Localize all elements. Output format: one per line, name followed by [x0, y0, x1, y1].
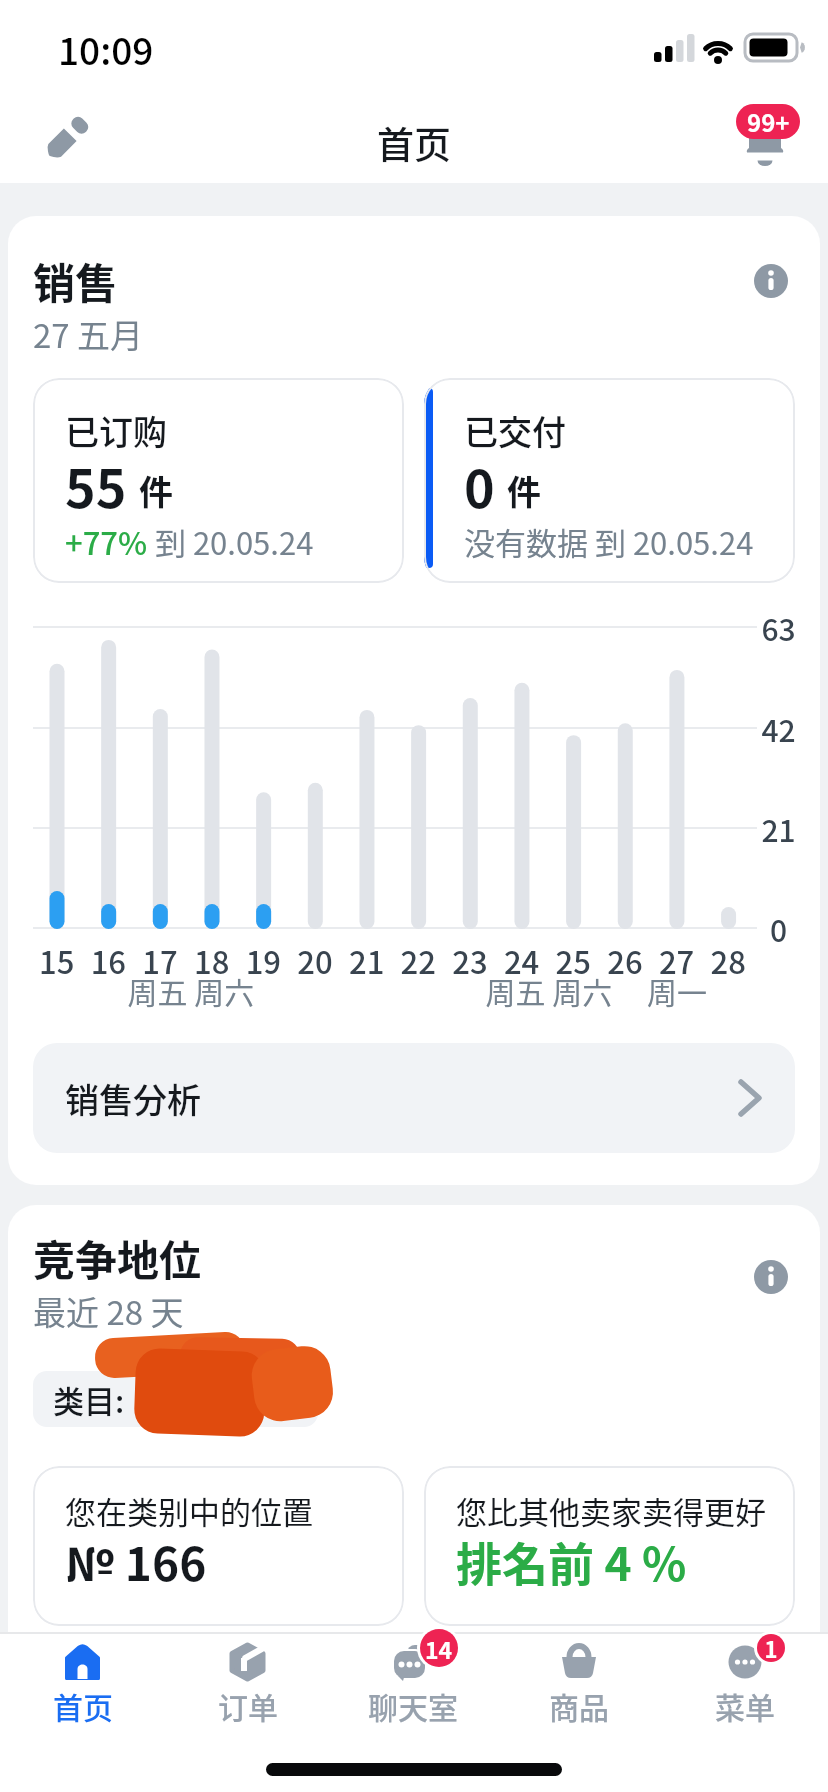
button[interactable]: 已订购 — [33, 378, 404, 583]
staticText: 27 五月 — [33, 310, 144, 358]
staticText: 类目: — [53, 1377, 125, 1422]
staticText: 订单 — [218, 1684, 278, 1727]
staticText: +77% — [65, 519, 148, 564]
staticText: 最近 28 天 — [33, 1287, 184, 1335]
staticText: 排名前 4 % — [456, 1528, 687, 1595]
staticText: 您比其他卖家卖得更好 — [456, 1488, 766, 1533]
staticText: 0 — [464, 448, 495, 523]
button[interactable]: 销售分析 — [33, 1043, 795, 1153]
button[interactable]: 聊天室 — [330, 1632, 496, 1792]
staticText: 件 — [507, 466, 541, 515]
button[interactable]: 首页 — [0, 1632, 165, 1792]
button[interactable]: 菜单 — [662, 1632, 828, 1792]
button[interactable] — [753, 263, 789, 299]
staticText: 竞争地位 — [33, 1227, 202, 1288]
staticText: 销售分析 — [65, 1074, 201, 1123]
staticText: 菜单 — [715, 1684, 775, 1727]
button[interactable] — [42, 113, 90, 165]
staticText: 首页 — [377, 116, 451, 170]
staticText: 销售 — [33, 250, 118, 311]
staticText: 聊天室 — [368, 1684, 458, 1727]
button[interactable]: 订单 — [165, 1632, 330, 1792]
staticText: 件 — [139, 466, 173, 515]
staticText: 到 20.05.24 — [148, 519, 314, 564]
staticText: 55 — [65, 448, 127, 523]
staticText: 10:09 — [58, 22, 154, 76]
button[interactable] — [753, 1259, 789, 1295]
staticText: 99+ — [747, 104, 790, 139]
staticText: 您在类别中的位置 — [65, 1488, 313, 1533]
staticText: 商品 — [549, 1684, 609, 1727]
button[interactable]: 99+ — [726, 96, 810, 168]
button[interactable]: 您比其他卖家卖得更好 — [424, 1466, 795, 1626]
button[interactable]: 您在类别中的位置 — [33, 1466, 404, 1626]
button[interactable]: 类目: — [33, 1371, 318, 1427]
button[interactable]: 商品 — [496, 1632, 662, 1792]
staticText: 没有数据 到 20.05.24 — [464, 519, 754, 564]
staticText: 已订购 — [65, 406, 167, 455]
staticText: № 166 — [65, 1528, 207, 1595]
button[interactable]: 已交付 — [424, 378, 795, 583]
staticText: 已交付 — [464, 406, 566, 455]
staticText: 首页 — [53, 1684, 113, 1727]
